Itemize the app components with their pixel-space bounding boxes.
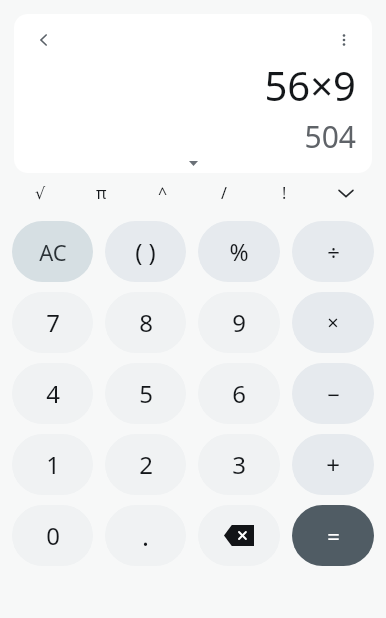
button[interactable]: = xyxy=(292,505,374,566)
staticText: + xyxy=(326,448,340,481)
button[interactable]: 3 xyxy=(198,434,280,495)
staticText: = xyxy=(327,521,340,551)
button[interactable]: 1 xyxy=(12,434,93,495)
staticText: 504 xyxy=(304,116,356,157)
staticText: AC xyxy=(39,237,67,267)
staticText: 5 xyxy=(139,377,153,410)
button[interactable]: 7 xyxy=(12,292,93,353)
staticText: 7 xyxy=(46,306,60,339)
button[interactable]: % xyxy=(198,221,280,282)
button[interactable]: − xyxy=(292,363,374,424)
button[interactable]: ( ) xyxy=(105,221,186,282)
button[interactable]: More options xyxy=(324,20,364,60)
button[interactable]: More functions xyxy=(315,173,376,213)
button[interactable]: Backspace xyxy=(198,505,280,566)
button[interactable]: √ xyxy=(10,173,71,213)
button[interactable]: Expand xyxy=(180,156,206,170)
staticText: 1 xyxy=(46,448,60,481)
button[interactable]: / xyxy=(193,173,254,213)
staticText: 4 xyxy=(46,377,60,410)
button[interactable]: AC xyxy=(12,221,93,282)
button[interactable]: π xyxy=(71,173,132,213)
staticText: − xyxy=(327,379,340,409)
staticText: 0 xyxy=(46,519,60,552)
staticText: 2 xyxy=(139,448,153,481)
button[interactable]: ÷ xyxy=(292,221,374,282)
button[interactable]: × xyxy=(292,292,374,353)
button[interactable]: 2 xyxy=(105,434,186,495)
staticText: ^ xyxy=(158,182,168,204)
button[interactable]: 5 xyxy=(105,363,186,424)
staticText: / xyxy=(221,182,227,204)
staticText: ! xyxy=(282,182,287,204)
staticText: 9 xyxy=(232,306,246,339)
staticText: 56×9 xyxy=(264,58,356,112)
button[interactable]: ^ xyxy=(132,173,193,213)
button[interactable]: 8 xyxy=(105,292,186,353)
button[interactable]: + xyxy=(292,434,374,495)
button[interactable]: 4 xyxy=(12,363,93,424)
staticText: × xyxy=(327,309,339,336)
staticText: ( ) xyxy=(135,235,156,268)
staticText: √ xyxy=(35,184,46,203)
button[interactable]: . xyxy=(105,505,186,566)
staticText: 8 xyxy=(139,306,153,339)
button[interactable]: 6 xyxy=(198,363,280,424)
staticText: ÷ xyxy=(327,237,340,267)
button[interactable]: Back xyxy=(24,20,64,60)
staticText: 3 xyxy=(232,448,246,481)
staticText: π xyxy=(96,182,107,204)
staticText: . xyxy=(142,518,149,553)
staticText: 6 xyxy=(232,377,246,410)
button[interactable]: 9 xyxy=(198,292,280,353)
button[interactable]: 0 xyxy=(12,505,93,566)
staticText: % xyxy=(229,236,249,267)
button[interactable]: ! xyxy=(254,173,315,213)
